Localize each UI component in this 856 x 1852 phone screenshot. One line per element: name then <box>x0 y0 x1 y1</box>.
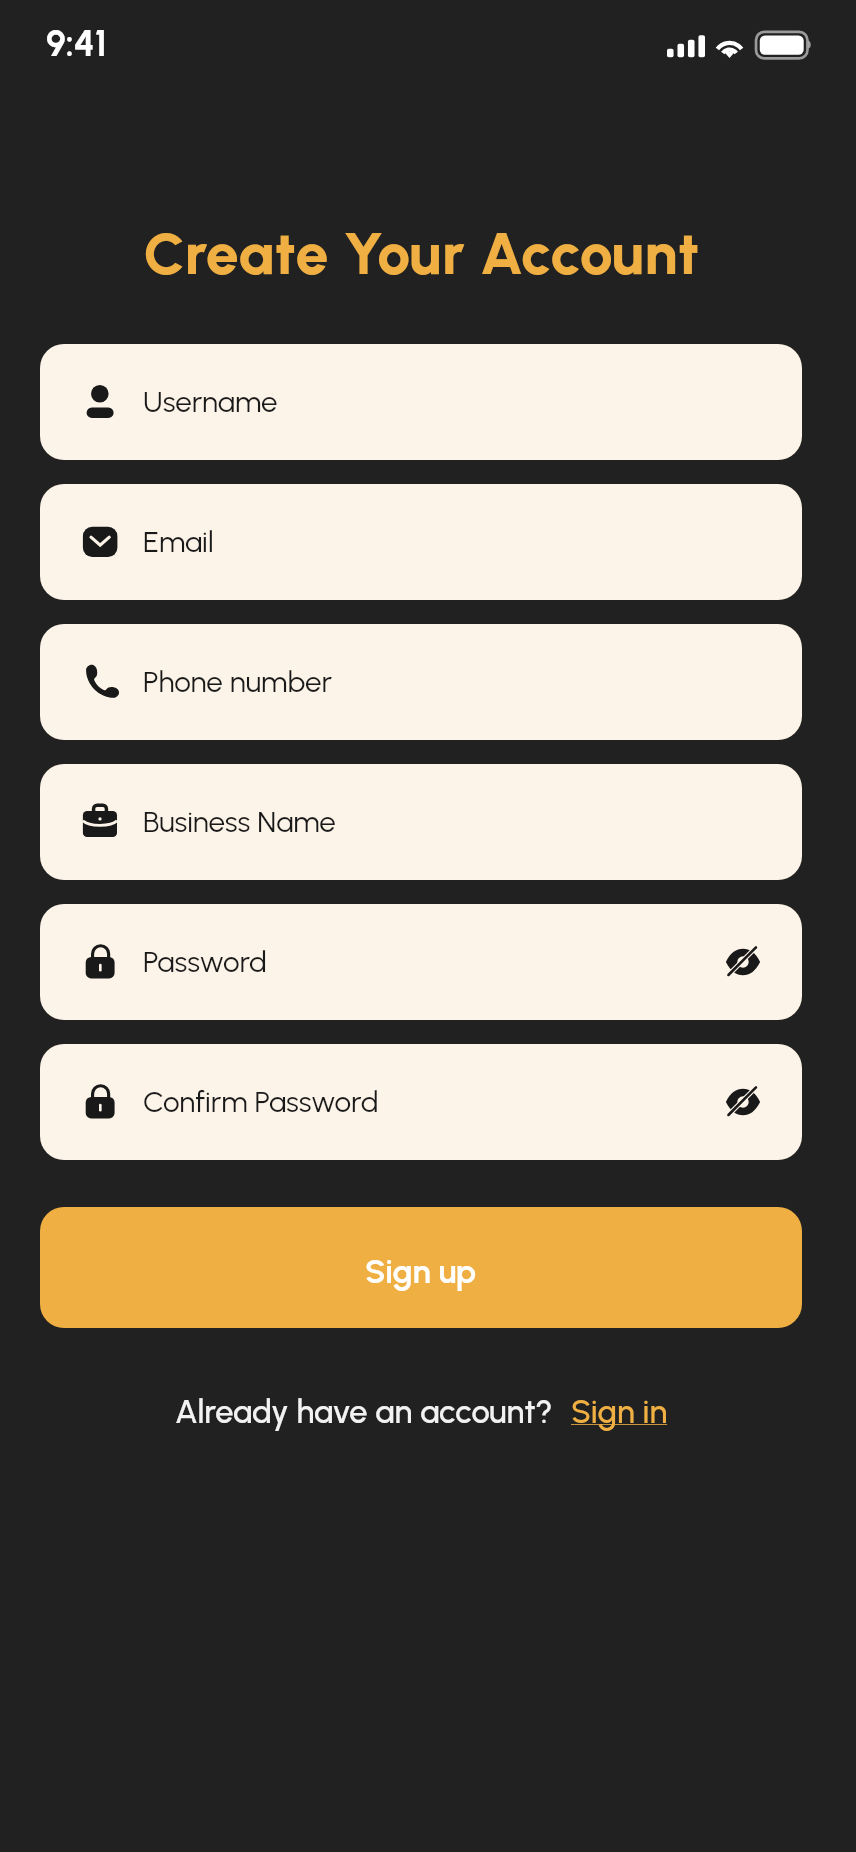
staticText: Business Name <box>143 804 336 840</box>
staticText: Phone number <box>143 664 333 700</box>
button[interactable]: Business Name <box>40 764 802 880</box>
button[interactable]: Username <box>40 344 802 460</box>
button[interactable]: Phone number <box>40 624 802 740</box>
button[interactable]: Confirm Password <box>40 1044 802 1160</box>
staticText: 9:41 <box>46 22 107 65</box>
staticText: Confirm Password <box>143 1084 379 1120</box>
staticText: Sign in <box>571 1392 668 1431</box>
button[interactable]: Show password <box>715 934 771 990</box>
staticText: Create Your Account <box>143 218 700 289</box>
button[interactable]: Email <box>40 484 802 600</box>
staticText: Password <box>143 944 267 980</box>
button[interactable]: Sign in <box>571 1392 668 1431</box>
button[interactable]: Password <box>40 904 802 1020</box>
staticText: Email <box>143 524 214 560</box>
button[interactable]: Sign up <box>40 1207 802 1328</box>
staticText: Sign up <box>365 1252 477 1292</box>
staticText: Username <box>143 384 278 420</box>
staticText: Already have an account? <box>175 1392 553 1431</box>
button[interactable]: Show password <box>715 1074 771 1130</box>
